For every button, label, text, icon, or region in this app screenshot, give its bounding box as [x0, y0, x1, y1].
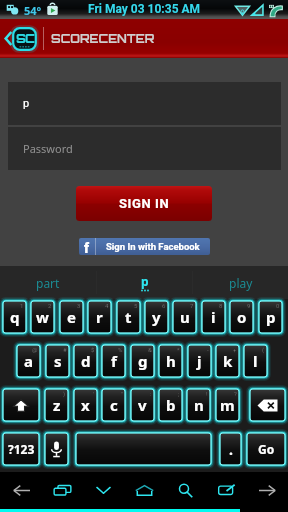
staticText: 2: [48, 302, 52, 309]
button[interactable]: ": [101, 388, 126, 422]
staticText: Fri May 03 10:35 AM: [88, 2, 201, 16]
button[interactable]: ;: [158, 388, 183, 422]
staticText: o: [237, 307, 247, 327]
staticText: j: [197, 351, 202, 371]
button[interactable]: f: [79, 238, 210, 255]
button[interactable]: 2: [30, 300, 55, 334]
staticText: q: [10, 307, 20, 327]
button[interactable]: Password: [8, 127, 281, 170]
button[interactable]: 3: [59, 300, 84, 334]
button[interactable]: @: [16, 344, 41, 378]
staticText: @: [32, 346, 38, 353]
staticText: (: [262, 346, 265, 353]
staticText: ': [93, 390, 95, 397]
staticText: SC: [16, 31, 34, 46]
button[interactable]: !: [186, 388, 211, 422]
staticText: .: [229, 440, 233, 459]
button[interactable]: 9: [229, 300, 254, 334]
button[interactable]: part: [0, 266, 96, 299]
button[interactable]: -: [187, 344, 212, 378]
staticText: ): [63, 390, 66, 397]
button[interactable]: ?: [215, 388, 240, 422]
button[interactable]: ?123: [2, 432, 40, 466]
staticText: a: [24, 351, 33, 371]
button[interactable]: $: [73, 344, 98, 378]
staticText: 4: [105, 302, 109, 309]
other: Voice input: [51, 440, 62, 458]
button[interactable]: Back: [2, 19, 14, 58]
button[interactable]: 4: [87, 300, 112, 334]
button[interactable]: #: [45, 344, 70, 378]
button[interactable]: +: [215, 344, 240, 378]
button[interactable]: Compose: [206, 472, 247, 508]
button[interactable]: play: [193, 266, 288, 299]
button[interactable]: 7: [172, 300, 197, 334]
staticText: SIGN IN: [119, 196, 170, 211]
staticText: 1: [20, 302, 24, 309]
staticText: play: [229, 275, 253, 291]
staticText: l: [253, 351, 258, 371]
button[interactable]: [75, 432, 212, 466]
button[interactable]: :: [130, 388, 155, 422]
staticText: v: [138, 395, 147, 415]
staticText: w: [36, 307, 49, 327]
staticText: u: [180, 307, 190, 327]
staticText: h: [166, 351, 176, 371]
button[interactable]: Recent apps: [42, 472, 83, 508]
button[interactable]: ': [73, 388, 98, 422]
button[interactable]: Forward: [247, 472, 288, 508]
other: Shift: [13, 398, 29, 413]
staticText: ?: [234, 390, 237, 397]
button[interactable]: 0: [258, 300, 283, 334]
button[interactable]: Delete: [249, 388, 286, 422]
button[interactable]: 6: [144, 300, 169, 334]
staticText: !: [206, 390, 208, 397]
staticText: Password: [23, 141, 73, 156]
staticText: #: [63, 346, 67, 353]
staticText: +: [233, 346, 237, 353]
staticText: e: [67, 307, 76, 327]
staticText: b: [166, 395, 176, 415]
staticText: SCORECENTER: [51, 31, 155, 46]
staticText: t: [125, 307, 132, 327]
staticText: 54°: [24, 3, 42, 18]
staticText: ": [121, 390, 123, 397]
button[interactable]: Hide keyboard: [83, 472, 124, 508]
button[interactable]: Shift: [2, 388, 40, 422]
button[interactable]: Back: [0, 472, 42, 508]
button[interactable]: &: [130, 344, 155, 378]
staticText: f: [84, 240, 90, 255]
button[interactable]: Voice input: [44, 432, 69, 466]
staticText: 6: [162, 302, 166, 309]
button[interactable]: 5: [116, 300, 141, 334]
button[interactable]: 8: [201, 300, 226, 334]
staticText: $: [91, 346, 95, 353]
staticText: g: [138, 351, 148, 371]
staticText: p: [141, 273, 149, 289]
button[interactable]: Go: [246, 432, 286, 466]
staticText: 8: [219, 302, 223, 309]
staticText: ?123: [8, 441, 35, 457]
button[interactable]: ): [44, 388, 69, 422]
button[interactable]: Search: [165, 472, 206, 508]
staticText: x: [81, 395, 90, 415]
staticText: p: [23, 97, 30, 110]
button[interactable]: Home: [124, 472, 165, 508]
button[interactable]: %: [101, 344, 126, 378]
staticText: r: [96, 307, 103, 327]
button[interactable]: p: [97, 266, 192, 299]
staticText: Go: [258, 441, 275, 457]
staticText: z: [53, 395, 61, 415]
button[interactable]: .: [219, 432, 242, 466]
button[interactable]: p: [8, 82, 281, 125]
staticText: :: [150, 390, 152, 397]
staticText: 7: [190, 302, 194, 309]
staticText: 3: [77, 302, 81, 309]
button[interactable]: SIGN IN: [76, 186, 212, 221]
button[interactable]: (: [243, 344, 268, 378]
staticText: &: [148, 346, 152, 353]
staticText: 5: [134, 302, 138, 309]
button[interactable]: 1: [2, 300, 27, 334]
staticText: Sign In with Facebook: [106, 241, 200, 252]
button[interactable]: *: [158, 344, 183, 378]
